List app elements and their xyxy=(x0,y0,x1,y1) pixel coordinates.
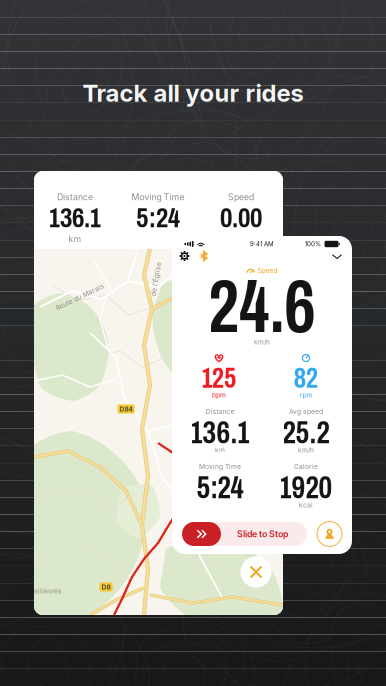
staticText: 136.1 xyxy=(49,203,101,233)
staticText: D8 xyxy=(101,583,110,591)
staticText: Speed xyxy=(228,192,254,202)
staticText: 0.00 xyxy=(220,203,262,233)
staticText: 9:41 AM xyxy=(250,240,274,248)
staticText: 5:24 xyxy=(136,203,180,233)
staticText: km/h xyxy=(298,446,314,454)
staticText: Calorie xyxy=(294,462,318,471)
staticText: 1920 xyxy=(279,471,332,505)
staticText: 100% xyxy=(305,240,321,248)
button[interactable]: Settings xyxy=(176,247,193,264)
staticText: Slide to Stop xyxy=(237,529,288,539)
staticText: 136.1 xyxy=(190,416,249,450)
staticText: Chemin xyxy=(201,357,226,365)
button[interactable]: Slide to Stop xyxy=(182,522,307,546)
staticText: 25.2 xyxy=(282,416,329,450)
staticText: Route de Tourville xyxy=(200,281,259,289)
staticText: Moving Time xyxy=(131,192,184,202)
button[interactable]: Bluetooth xyxy=(195,247,212,264)
staticText: 125 xyxy=(202,362,236,394)
staticText: 5:24 xyxy=(196,471,243,505)
staticText: de l'Église xyxy=(139,275,173,283)
staticText: Distance xyxy=(205,407,234,416)
staticText: Distance xyxy=(57,192,93,202)
staticText: eillèvres xyxy=(34,587,62,595)
staticText: 24.6 xyxy=(208,266,315,348)
staticText: Moving Time xyxy=(199,462,241,471)
staticText: kcal xyxy=(299,501,313,509)
staticText: Avg speed xyxy=(289,407,323,416)
button[interactable]: Map xyxy=(316,521,342,547)
staticText: km xyxy=(215,446,225,454)
button[interactable]: Collapse xyxy=(328,247,346,264)
staticText: Track all your rides xyxy=(82,78,303,107)
button[interactable]: Close xyxy=(240,556,271,587)
staticText: Route du Marais xyxy=(53,293,106,301)
staticText: bpm xyxy=(212,391,226,399)
staticText: D84 xyxy=(119,405,132,413)
staticText: 82 xyxy=(294,362,318,394)
staticText: km/h xyxy=(254,338,270,346)
staticText: km xyxy=(68,234,81,244)
staticText: Speed xyxy=(257,266,277,275)
staticText: rpm xyxy=(299,391,312,399)
